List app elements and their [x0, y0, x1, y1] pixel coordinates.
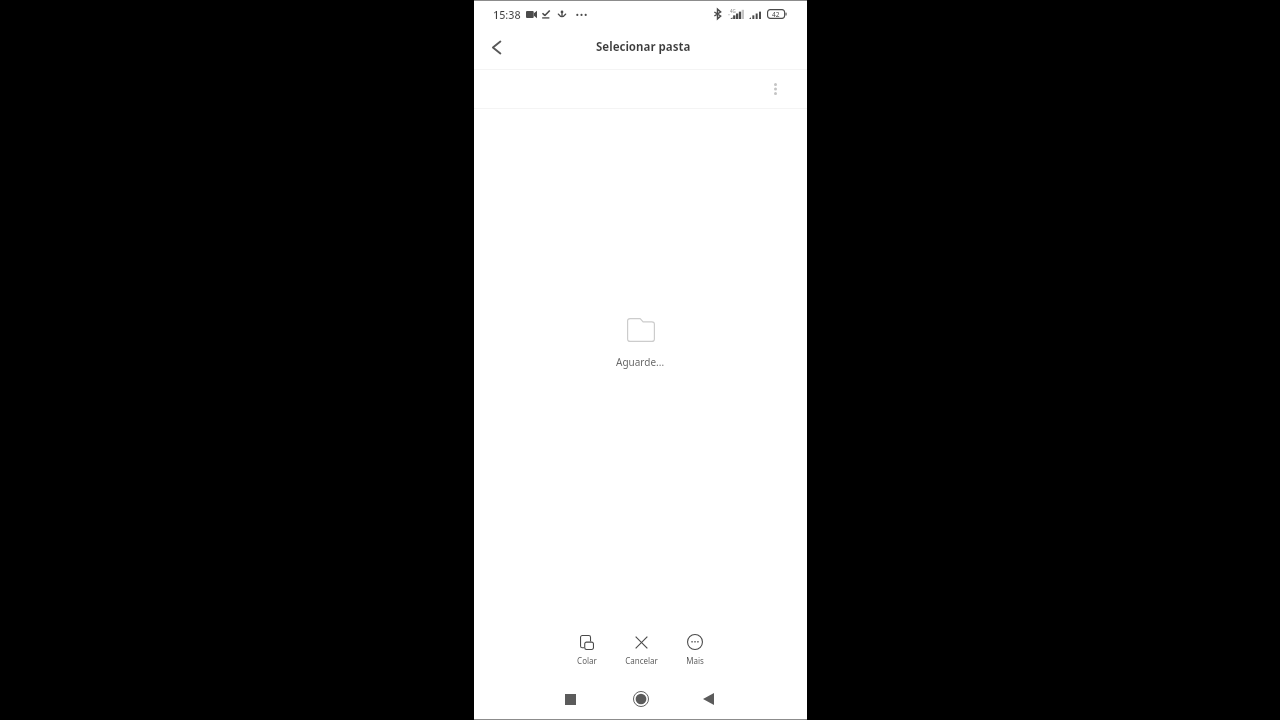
staticText: Mais	[686, 655, 704, 666]
button[interactable]: Mais	[668, 632, 722, 666]
staticText: Aguarde...	[616, 355, 665, 369]
button[interactable]: Back	[685, 682, 731, 716]
button[interactable]: Back	[480, 31, 512, 63]
button[interactable]: Colar	[560, 632, 614, 666]
staticText: Cancelar	[625, 655, 658, 666]
staticText: Colar	[577, 655, 597, 666]
button[interactable]: More options	[763, 77, 787, 101]
staticText: 15:38	[493, 7, 521, 22]
button[interactable]: Recents	[548, 682, 594, 716]
button[interactable]: Cancelar	[614, 632, 668, 666]
staticText: 4G	[730, 8, 736, 14]
staticText: Selecionar pasta	[596, 39, 691, 55]
staticText: 42	[772, 10, 780, 19]
button[interactable]: Home	[618, 682, 664, 716]
